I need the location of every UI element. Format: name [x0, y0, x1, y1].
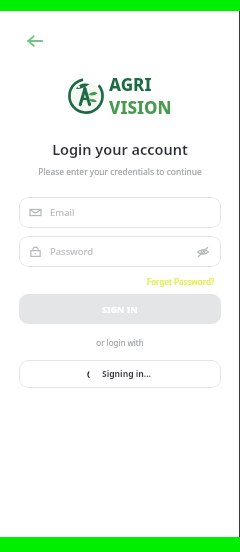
button[interactable]: Back	[22, 28, 48, 54]
staticText: Login your account	[0, 139, 240, 159]
button[interactable]: Signing in...	[19, 360, 221, 388]
staticText: Signing in...	[102, 368, 152, 380]
staticText: or login with	[0, 337, 240, 348]
staticText: Forget Password?	[147, 276, 215, 287]
button[interactable]: Show password	[195, 244, 210, 259]
staticText: Password	[50, 245, 93, 258]
staticText: VISION	[109, 96, 172, 119]
staticText: AGRI	[109, 73, 152, 96]
staticText: Please enter your credentials to continu…	[0, 166, 240, 178]
button[interactable]: Password	[19, 236, 221, 267]
staticText: SIGN IN	[102, 303, 138, 315]
button[interactable]: Email	[19, 197, 221, 228]
staticText: Email	[50, 206, 75, 219]
button[interactable]: Forget Password?	[145, 274, 217, 289]
button[interactable]: SIGN IN	[19, 294, 221, 324]
